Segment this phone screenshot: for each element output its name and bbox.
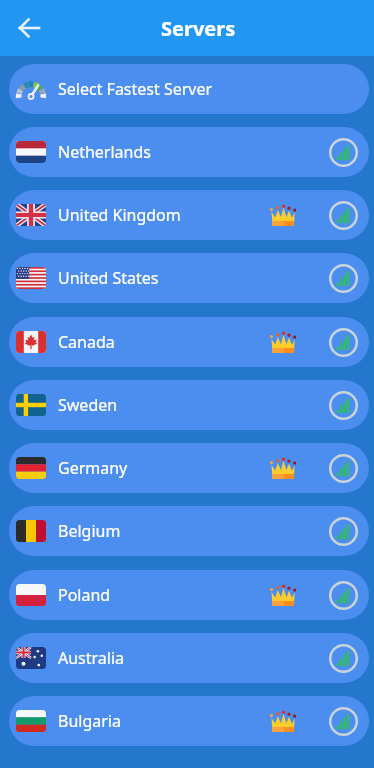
button[interactable]: Sweden	[9, 380, 369, 430]
staticText: United Kingdom	[58, 204, 181, 226]
button[interactable]: Bulgaria	[9, 696, 369, 746]
staticText: Servers	[161, 15, 236, 42]
button[interactable]: Canada	[9, 317, 369, 367]
staticText: Sweden	[58, 394, 118, 416]
button[interactable]: United States	[9, 253, 369, 303]
button[interactable]: Australia	[9, 633, 369, 683]
button[interactable]: Belgium	[9, 506, 369, 556]
staticText: Netherlands	[58, 141, 151, 163]
staticText: Germany	[58, 457, 128, 479]
staticText: Australia	[58, 647, 125, 669]
staticText: Poland	[58, 584, 111, 606]
staticText: Select Fastest Server	[58, 78, 213, 100]
button[interactable]	[16, 15, 42, 41]
staticText: Bulgaria	[58, 710, 121, 732]
button[interactable]: Germany	[9, 443, 369, 493]
button[interactable]: Poland	[9, 570, 369, 620]
button[interactable]: United Kingdom	[9, 190, 369, 240]
staticText: Canada	[58, 331, 115, 353]
button[interactable]: Netherlands	[9, 127, 369, 177]
staticText: Belgium	[58, 520, 121, 542]
button[interactable]: Select Fastest Server	[9, 64, 369, 114]
staticText: United States	[58, 267, 159, 289]
